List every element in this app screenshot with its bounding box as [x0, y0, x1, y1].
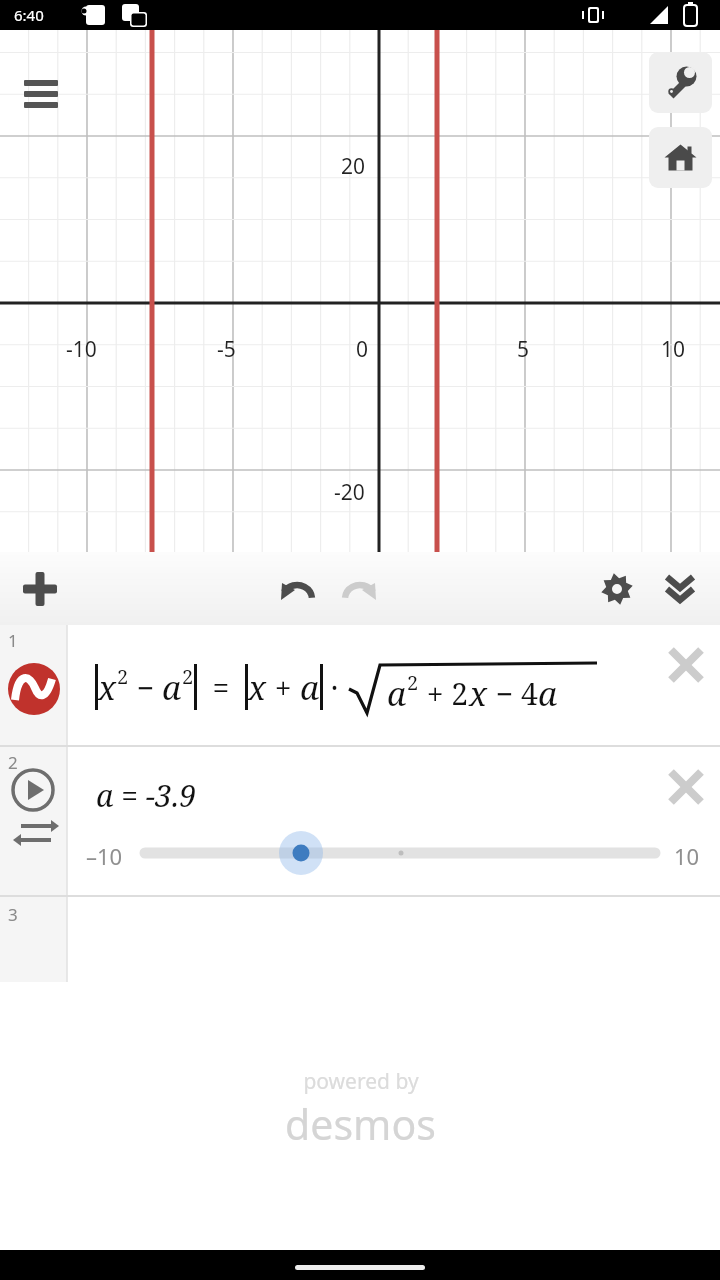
- button[interactable]: Slider for a: [0, 825, 720, 885]
- staticText: desmos: [285, 1096, 436, 1152]
- button[interactable]: Delete expression: [664, 765, 708, 809]
- button[interactable]: Undo: [271, 563, 323, 615]
- button[interactable]: Loop mode: [13, 818, 53, 848]
- staticText: 10: [674, 841, 700, 871]
- button[interactable]: Collapse: [654, 563, 706, 615]
- staticText: 1: [8, 629, 18, 652]
- staticText: x: [248, 665, 267, 710]
- staticText: powered by: [303, 1067, 419, 1096]
- staticText: -5: [217, 335, 236, 364]
- staticText: =: [197, 667, 245, 708]
- staticText: -20: [334, 478, 365, 507]
- staticText: a = −3.9: [96, 775, 197, 816]
- staticText: a: [387, 671, 407, 716]
- staticText: 5: [517, 335, 530, 364]
- staticText: 2: [407, 669, 419, 696]
- staticText: 20: [341, 152, 366, 181]
- button[interactable]: 3: [0, 897, 720, 982]
- staticText: –10: [86, 841, 123, 871]
- staticText: − 4: [488, 673, 538, 714]
- staticText: a: [300, 665, 320, 710]
- staticText: x: [98, 665, 117, 710]
- staticText: 2: [182, 663, 194, 690]
- staticText: 10: [661, 335, 686, 364]
- button[interactable]: Add expression: [14, 563, 66, 615]
- staticText: a: [538, 671, 558, 716]
- staticText: 6:40: [14, 5, 44, 25]
- button[interactable]: 1: [0, 625, 720, 745]
- button[interactable]: Play slider: [11, 768, 55, 812]
- staticText: 3: [8, 903, 18, 926]
- button[interactable]: Graph settings: [649, 52, 712, 113]
- button[interactable]: Redo: [334, 563, 386, 615]
- staticText: ·: [323, 667, 347, 708]
- button[interactable]: Menu: [16, 62, 66, 112]
- button[interactable]: Delete expression: [664, 643, 708, 687]
- button[interactable]: Settings: [591, 563, 643, 615]
- staticText: 2: [117, 663, 129, 690]
- staticText: + 2: [419, 673, 469, 714]
- staticText: −: [129, 667, 162, 708]
- staticText: x: [469, 671, 488, 716]
- button[interactable]: 2: [0, 747, 720, 895]
- button[interactable]: Home view: [649, 127, 712, 188]
- staticText: a: [162, 665, 182, 710]
- staticText: -10: [66, 335, 97, 364]
- staticText: 0: [356, 335, 369, 364]
- staticText: +: [267, 667, 300, 708]
- staticText: 2: [8, 751, 18, 774]
